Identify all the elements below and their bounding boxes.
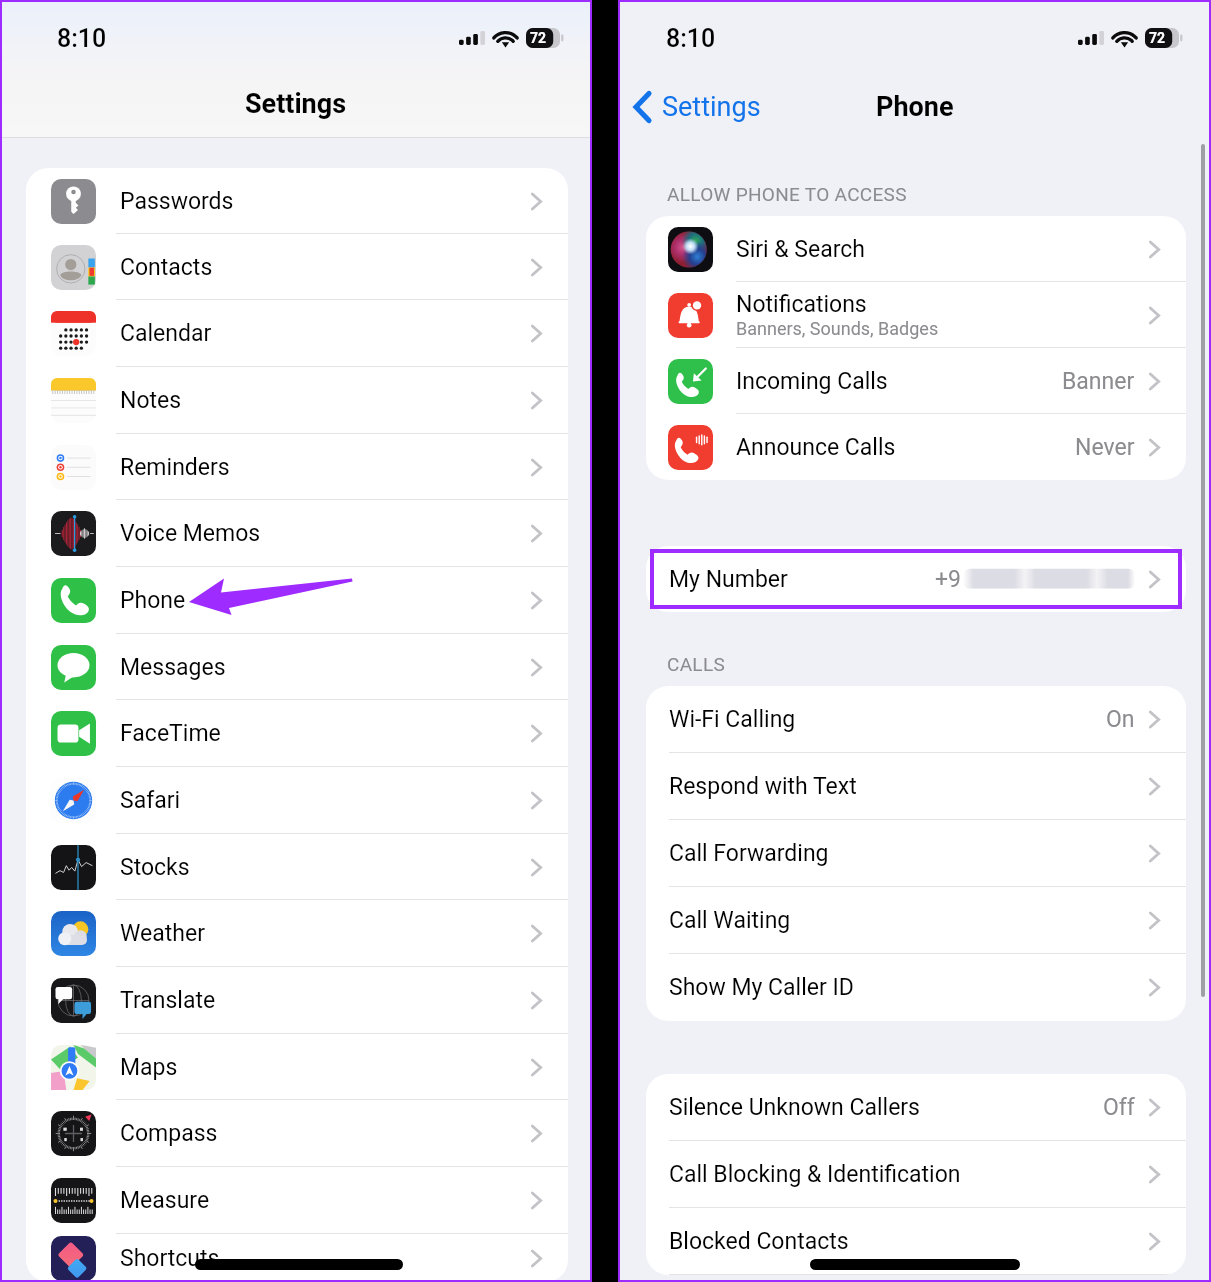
staticText: Never [1075,434,1135,461]
staticText: Maps [120,1054,178,1081]
staticText: Measure [120,1187,210,1214]
staticText: Notifications [736,291,867,318]
staticText: Call Forwarding [669,840,829,867]
staticText: Banner [1062,368,1135,395]
button[interactable]: Voice Memos [26,500,568,567]
staticText: Contacts [120,254,213,281]
button[interactable]: Weather [26,900,568,967]
button[interactable]: Call Blocking & Identification [646,1141,1186,1208]
button[interactable]: Announce Calls [646,414,1186,480]
button[interactable]: Phone [26,567,568,634]
staticText: Announce Calls [736,434,896,461]
button[interactable]: FaceTime [26,700,568,767]
button[interactable]: Notifications [646,282,1186,348]
staticText: Respond with Text [669,773,857,800]
staticText: Blocked Contacts [669,1228,849,1255]
staticText: Stocks [120,854,190,881]
staticText: Phone [120,587,186,614]
staticText: My Number [669,566,788,593]
staticText: Incoming Calls [736,368,888,395]
button[interactable]: Contacts [26,234,568,300]
button[interactable]: Show My Caller ID [646,954,1186,1021]
staticText: 8:10 [57,24,107,53]
staticText: Phone [876,91,954,123]
staticText: CALLS [667,653,726,675]
staticText: Banners, Sounds, Badges [736,318,939,339]
button[interactable]: Stocks [26,834,568,900]
staticText: FaceTime [120,720,221,747]
button[interactable]: Silence Unknown Callers [646,1074,1186,1141]
button[interactable]: Calendar [26,300,568,367]
button[interactable]: Blocked Contacts [646,1208,1186,1275]
staticText: On [1106,706,1135,733]
button[interactable]: Measure [26,1167,568,1234]
button[interactable]: Back to Settings [629,85,766,129]
staticText: 72 [1149,30,1166,46]
button[interactable]: Siri & Search [646,216,1186,282]
staticText: 72 [530,30,547,46]
staticText: Siri & Search [736,236,866,263]
staticText: Wi-Fi Calling [669,706,796,733]
staticText: ALLOW PHONE TO ACCESS [667,183,907,205]
staticText: Shortcuts [120,1245,220,1272]
staticText: Off [1103,1094,1135,1121]
button[interactable]: Call Waiting [646,887,1186,954]
staticText: Passwords [120,188,234,215]
staticText: Weather [120,920,205,947]
button[interactable]: Messages [26,634,568,700]
staticText: Calendar [120,320,212,347]
button[interactable]: Call Forwarding [646,820,1186,887]
staticText: Settings [245,88,347,120]
staticText: Silence Unknown Callers [669,1094,920,1121]
staticText: Call Blocking & Identification [669,1161,961,1188]
staticText: Call Waiting [669,907,791,934]
staticText: Notes [120,387,182,414]
button[interactable]: Notes [26,367,568,434]
staticText: Messages [120,654,226,681]
staticText: Show My Caller ID [669,974,854,1001]
staticText: Compass [120,1120,218,1147]
button[interactable]: My Number [646,546,1186,612]
staticText: Voice Memos [120,520,261,547]
staticText: Settings [662,91,761,123]
staticText: 8:10 [666,24,716,53]
button[interactable]: Compass [26,1100,568,1167]
staticText: Translate [120,987,216,1014]
button[interactable]: Reminders [26,434,568,500]
button[interactable]: Wi-Fi Calling [646,686,1186,753]
button[interactable]: Incoming Calls [646,348,1186,414]
staticText: +9 [935,566,961,593]
staticText: Reminders [120,454,230,481]
button[interactable]: Translate [26,967,568,1034]
staticText: Safari [120,787,181,814]
button[interactable]: Respond with Text [646,753,1186,820]
button[interactable]: Passwords [26,168,568,234]
button[interactable]: Safari [26,767,568,834]
button[interactable]: Shortcuts [26,1234,568,1282]
button[interactable]: Maps [26,1034,568,1100]
